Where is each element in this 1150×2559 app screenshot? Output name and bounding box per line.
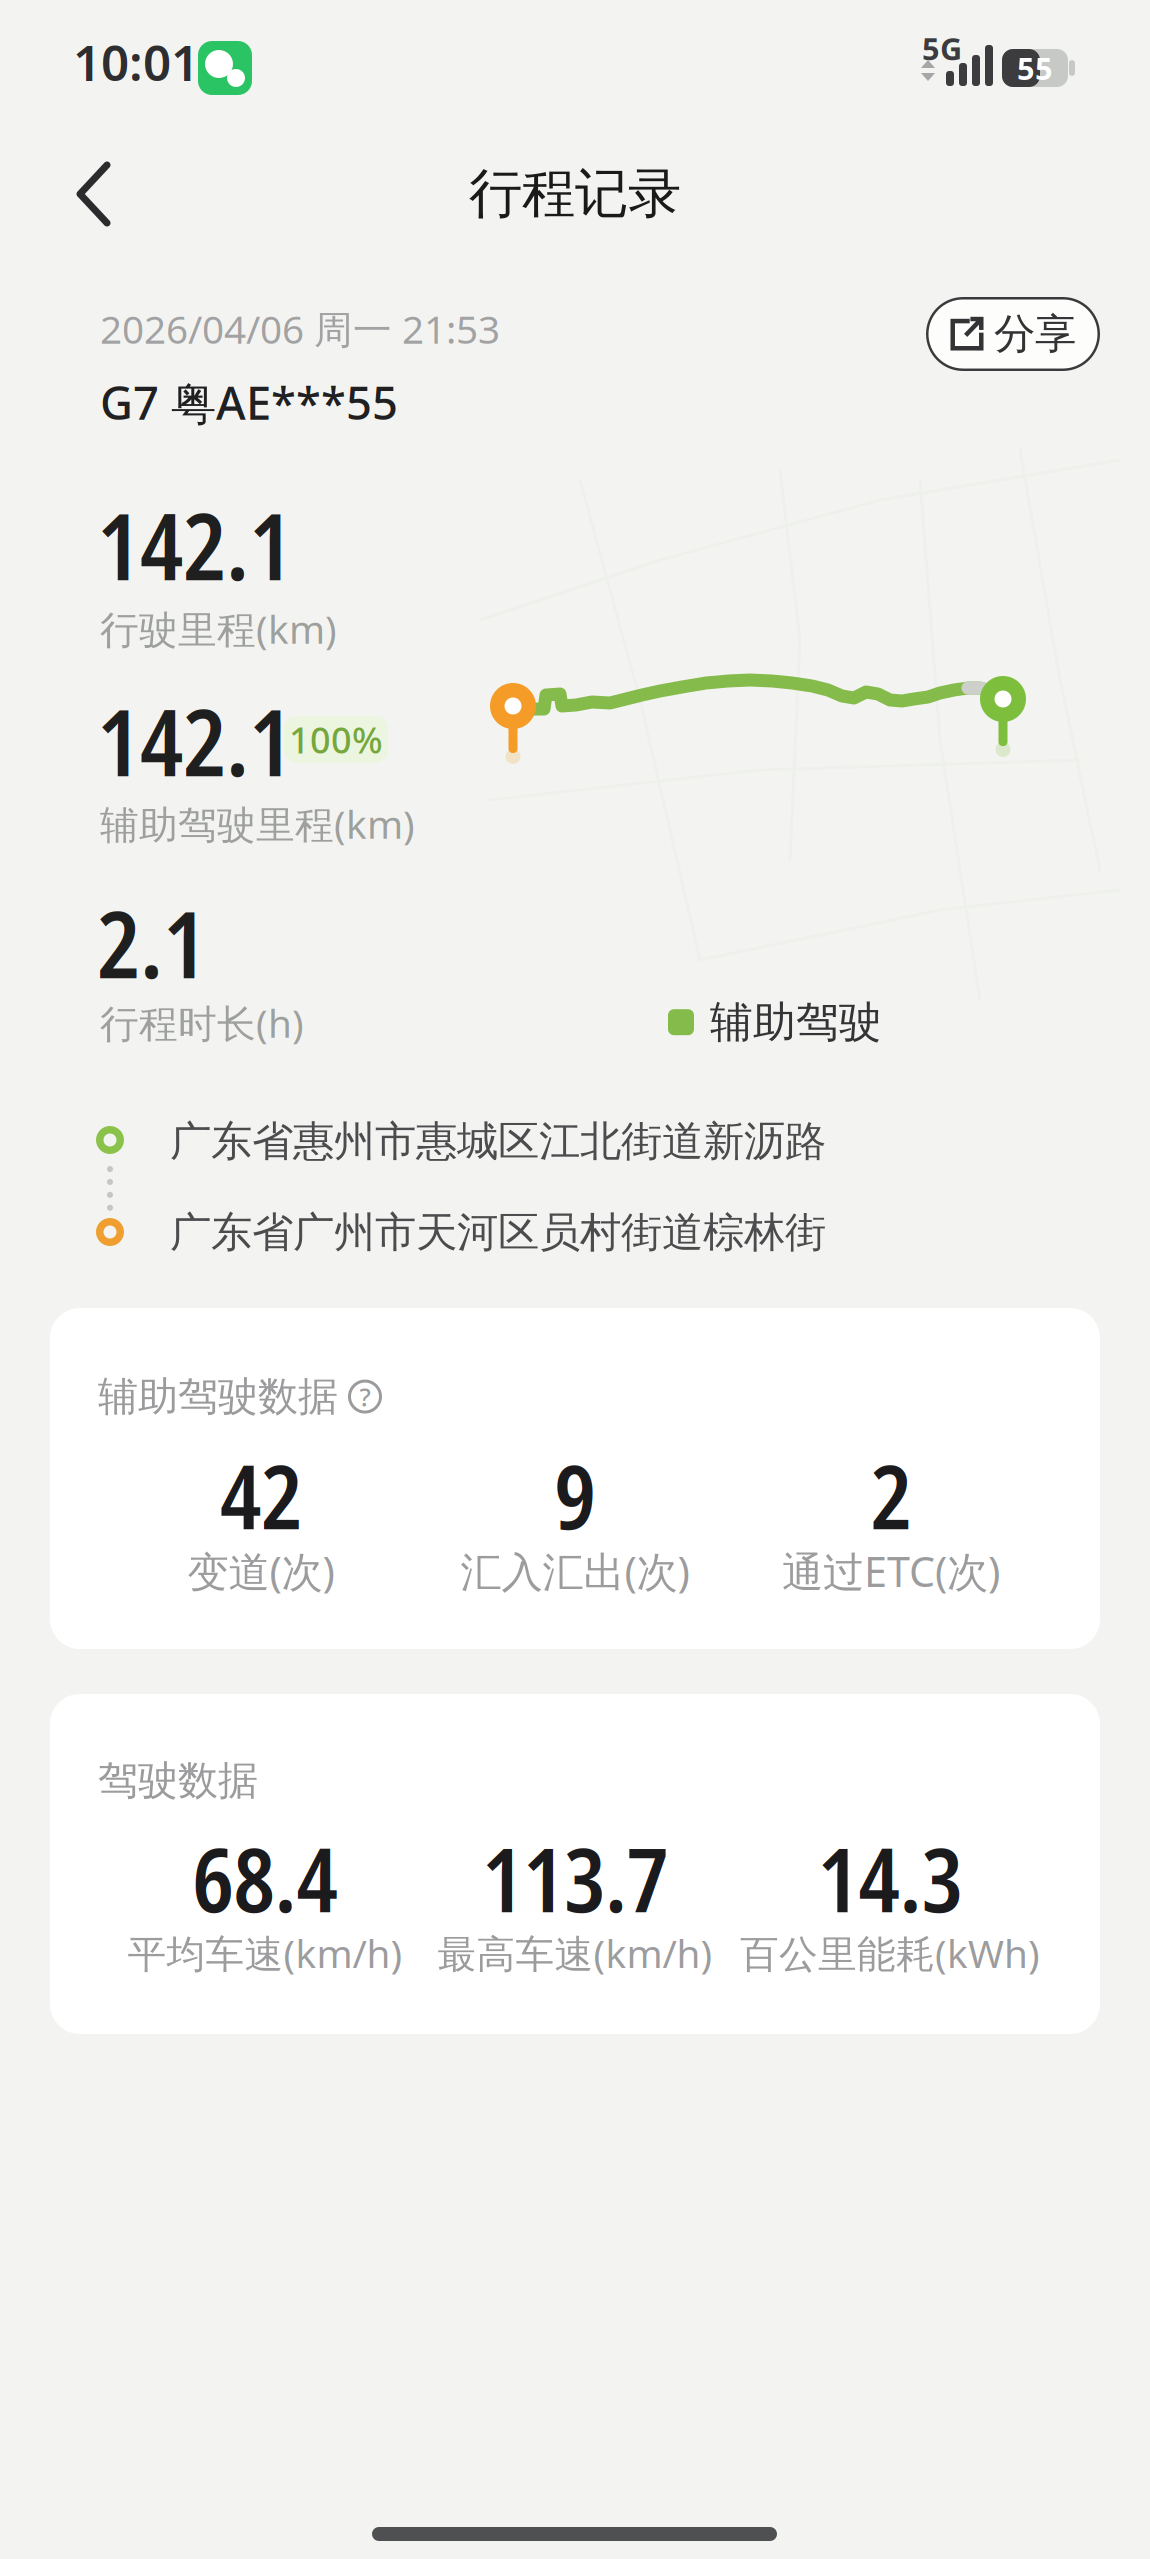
staticText: ?: [359, 1380, 370, 1413]
staticText: 辅助驾驶数据: [98, 1372, 338, 1421]
button[interactable]: About assisted driving data: [348, 1380, 382, 1414]
staticText: 9: [554, 1435, 595, 1555]
staticText: 2026/04/06 周一 21:53: [100, 303, 500, 354]
staticText: 100%: [289, 716, 383, 763]
staticText: 行驶里程(km): [100, 603, 337, 654]
staticText: 汇入汇出(次): [460, 1544, 689, 1598]
staticText: 通过ETC(次): [782, 1544, 1000, 1598]
staticText: G7 粤AE***55: [100, 372, 398, 432]
staticText: 10:01: [73, 29, 199, 94]
staticText: 113.7: [482, 1818, 668, 1938]
staticText: 最高车速(km/h): [437, 1927, 712, 1979]
staticText: 辅助驾驶: [710, 996, 882, 1048]
staticText: 42: [220, 1435, 302, 1555]
staticText: 变道(次): [187, 1544, 334, 1598]
button[interactable]: Back: [52, 152, 136, 236]
staticText: 分享: [994, 309, 1076, 359]
staticText: 广东省广州市天河区员村街道棕林街: [170, 1207, 826, 1258]
staticText: 平均车速(km/h): [127, 1927, 402, 1979]
staticText: 142.1: [97, 678, 292, 803]
staticText: 2.1: [97, 880, 206, 1005]
staticText: 广东省惠州市惠城区江北街道新沥路: [170, 1116, 826, 1167]
staticText: 辅助驾驶里程(km): [100, 798, 415, 849]
button[interactable]: Share: [926, 297, 1100, 371]
staticText: 14.3: [817, 1818, 962, 1938]
staticText: 2: [870, 1435, 911, 1555]
staticText: 行程记录: [469, 161, 681, 226]
staticText: 5G: [922, 28, 962, 69]
staticText: 驾驶数据: [98, 1756, 258, 1805]
staticText: 55: [1017, 48, 1053, 88]
staticText: 百公里能耗(kWh): [740, 1927, 1040, 1979]
staticText: 142.1: [97, 482, 292, 607]
staticText: 68.4: [192, 1818, 337, 1938]
staticText: 行程时长(h): [100, 997, 304, 1048]
